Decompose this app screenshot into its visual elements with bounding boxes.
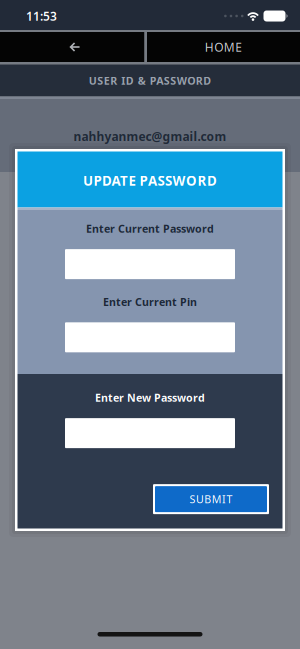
staticText: Enter Current Password	[86, 221, 214, 236]
button[interactable]: HOME	[147, 32, 300, 62]
staticText: USER ID & PASSWORD	[89, 73, 211, 88]
staticText: 11:53	[26, 8, 57, 24]
staticText: SUBMIT	[189, 492, 232, 506]
button[interactable]	[65, 249, 235, 279]
button[interactable]	[65, 322, 235, 352]
staticText: nahhyanmec@gmail.com	[73, 128, 226, 144]
staticText: Enter New Password	[95, 390, 205, 405]
staticText: Enter Current Pin	[103, 295, 197, 309]
button[interactable]	[0, 32, 144, 62]
button[interactable]: SUBMIT	[153, 484, 269, 514]
staticText: UPDATE PASSWORD	[83, 172, 217, 189]
staticText: HOME	[205, 39, 242, 55]
button[interactable]	[65, 418, 235, 448]
